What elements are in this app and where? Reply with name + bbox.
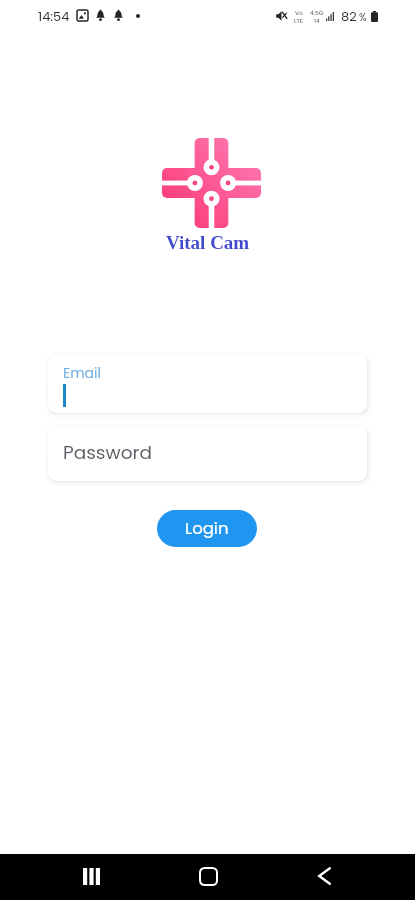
button[interactable]: Password	[48, 425, 367, 481]
staticText: LTE	[294, 17, 303, 25]
button[interactable]: Home	[183, 854, 233, 900]
staticText: Login	[185, 517, 229, 540]
staticText: Email	[63, 363, 101, 383]
staticText: Vital Cam	[166, 232, 250, 253]
staticText: Vo	[295, 9, 303, 17]
staticText: 82	[341, 7, 357, 25]
button[interactable]: Recent apps	[66, 854, 116, 900]
button[interactable]: Login	[157, 510, 257, 547]
button[interactable]: Email	[48, 354, 367, 413]
staticText: 4.5G	[310, 9, 324, 17]
staticText: Password	[63, 440, 152, 466]
staticText: 14:54	[38, 7, 70, 25]
staticText: %	[359, 10, 367, 24]
button[interactable]: Back	[299, 854, 349, 900]
staticText: 14	[314, 17, 320, 25]
